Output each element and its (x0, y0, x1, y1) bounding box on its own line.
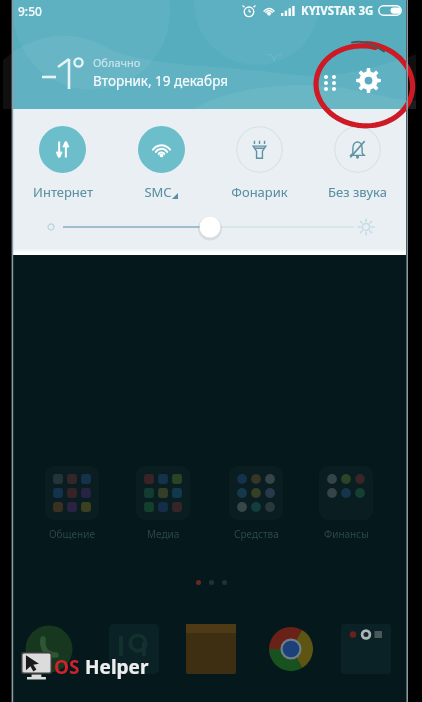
button[interactable] (319, 466, 373, 520)
button[interactable]: Edit toggles (312, 65, 348, 101)
staticText: 9:50 (18, 3, 42, 19)
button[interactable] (136, 466, 190, 520)
staticText: KYIVSTAR 3G (301, 3, 374, 19)
staticText: Финансы (324, 527, 369, 541)
button[interactable]: App (341, 624, 391, 674)
staticText: Фонарик (231, 183, 288, 201)
button[interactable]: App (109, 624, 159, 674)
staticText: Медиа (147, 527, 180, 541)
staticText: OS (54, 654, 80, 680)
button[interactable]: Settings (346, 58, 390, 102)
staticText: Интернет (33, 183, 93, 201)
button[interactable]: App (266, 624, 316, 674)
button[interactable]: Без звука (308, 126, 406, 201)
staticText: Средства (234, 527, 279, 541)
staticText: Helper (85, 654, 149, 680)
button[interactable]: App (186, 624, 236, 674)
button[interactable] (45, 466, 99, 520)
button[interactable]: Фонарик (210, 126, 308, 201)
button[interactable] (229, 466, 283, 520)
staticText: Облачно (93, 55, 141, 70)
staticText: Общение (49, 527, 95, 541)
staticText: Без звука (328, 183, 387, 201)
staticText: Вторник, 19 декабря (93, 72, 229, 90)
button[interactable]: App (24, 624, 74, 674)
button[interactable]: SMC (112, 126, 210, 201)
staticText: SMC (144, 183, 172, 201)
button[interactable]: Интернет (13, 126, 112, 201)
